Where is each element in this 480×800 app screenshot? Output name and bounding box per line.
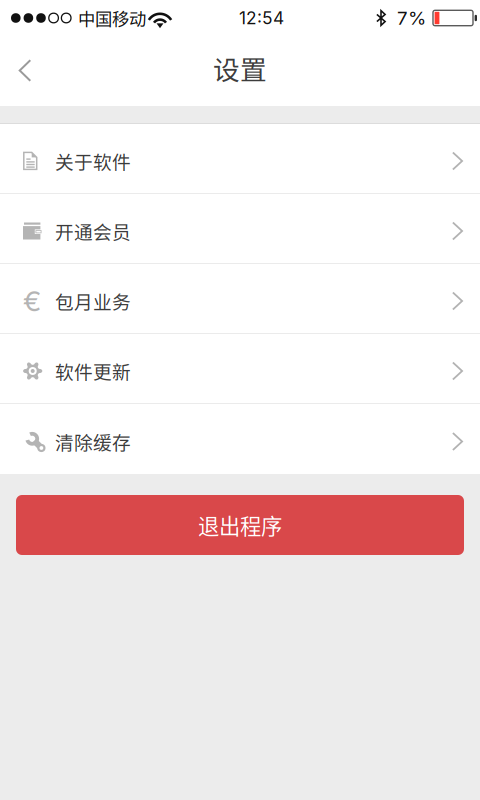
button[interactable]: 开通会员 bbox=[0, 194, 480, 264]
staticText: 包月业务 bbox=[55, 287, 131, 314]
staticText: 软件更新 bbox=[55, 357, 131, 384]
button[interactable]: 关于软件 bbox=[0, 124, 480, 194]
staticText: 退出程序 bbox=[198, 510, 282, 540]
button[interactable]: € bbox=[0, 264, 480, 334]
staticText: 7% bbox=[397, 7, 426, 29]
staticText: 设置 bbox=[213, 49, 267, 87]
button[interactable]: Back bbox=[0, 40, 50, 102]
staticText: 中国移动 bbox=[78, 5, 146, 31]
staticText: 开通会员 bbox=[55, 217, 131, 244]
staticText: 清除缓存 bbox=[55, 428, 131, 455]
staticText: 关于软件 bbox=[55, 147, 131, 174]
button[interactable]: 退出程序 bbox=[16, 495, 464, 555]
button[interactable]: 软件更新 bbox=[0, 334, 480, 404]
button[interactable]: 清除缓存 bbox=[0, 404, 480, 474]
staticText: 12:54 bbox=[239, 7, 284, 28]
staticText: € bbox=[23, 284, 41, 318]
